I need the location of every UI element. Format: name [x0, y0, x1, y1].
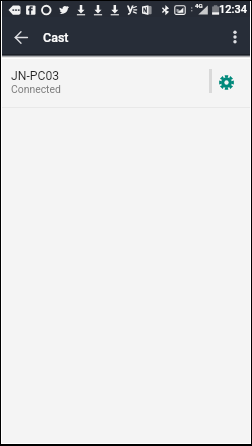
button[interactable]: JN-PC03	[2, 59, 206, 107]
button[interactable]: Navigate up	[6, 22, 36, 52]
button[interactable]: Settings	[209, 59, 250, 107]
staticText: Cast	[43, 30, 69, 45]
staticText: Connected	[11, 83, 61, 95]
staticText: JN-PC03	[11, 69, 60, 83]
button[interactable]: More options	[220, 22, 250, 52]
staticText: 4G	[195, 2, 203, 9]
staticText: 12:34	[219, 3, 247, 16]
